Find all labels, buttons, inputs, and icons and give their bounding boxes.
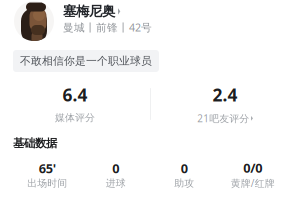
- staticText: 65': [39, 159, 56, 177]
- staticText: 塞梅尼奥: [63, 3, 115, 20]
- button[interactable]: 2.4: [150, 83, 300, 125]
- staticText: 曼城丨前锋丨42号: [63, 20, 152, 34]
- staticText: 0: [181, 159, 188, 177]
- staticText: 21吧友评分: [197, 112, 249, 125]
- staticText: 2.4: [212, 83, 237, 107]
- staticText: 0: [112, 159, 119, 177]
- staticText: 进球: [106, 177, 126, 189]
- staticText: 媒体评分: [55, 112, 95, 124]
- button[interactable]: 6.4: [0, 83, 150, 124]
- staticText: 助攻: [174, 177, 194, 189]
- button[interactable]: 不敢相信你是一个职业球员: [13, 50, 159, 72]
- button[interactable]: 塞梅尼奥: [0, 0, 300, 42]
- staticText: 6.4: [62, 83, 87, 107]
- staticText: 基础数据: [13, 136, 57, 150]
- staticText: 黄牌/红牌: [231, 176, 275, 190]
- staticText: 0/0: [243, 159, 262, 176]
- staticText: 不敢相信你是一个职业球员: [20, 54, 152, 68]
- staticText: 出场时间: [27, 177, 67, 189]
